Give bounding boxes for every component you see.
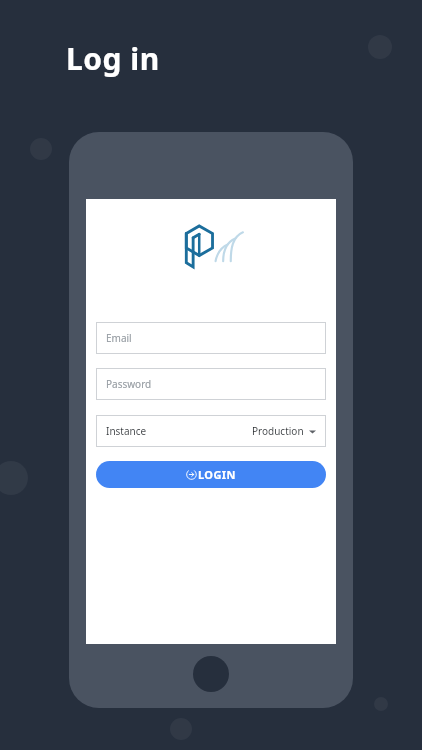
button[interactable]: LOGIN <box>96 461 326 488</box>
staticText: Email <box>106 331 132 345</box>
staticText: Password <box>106 377 152 391</box>
staticText: LOGIN <box>198 467 236 482</box>
staticText: Instance <box>106 424 147 438</box>
button[interactable]: Email <box>96 322 326 354</box>
button[interactable]: Instance <box>96 415 326 447</box>
staticText: Production <box>252 424 304 438</box>
button[interactable]: Home <box>193 656 229 692</box>
button[interactable]: Password <box>96 368 326 400</box>
staticText: Log in <box>66 38 160 79</box>
